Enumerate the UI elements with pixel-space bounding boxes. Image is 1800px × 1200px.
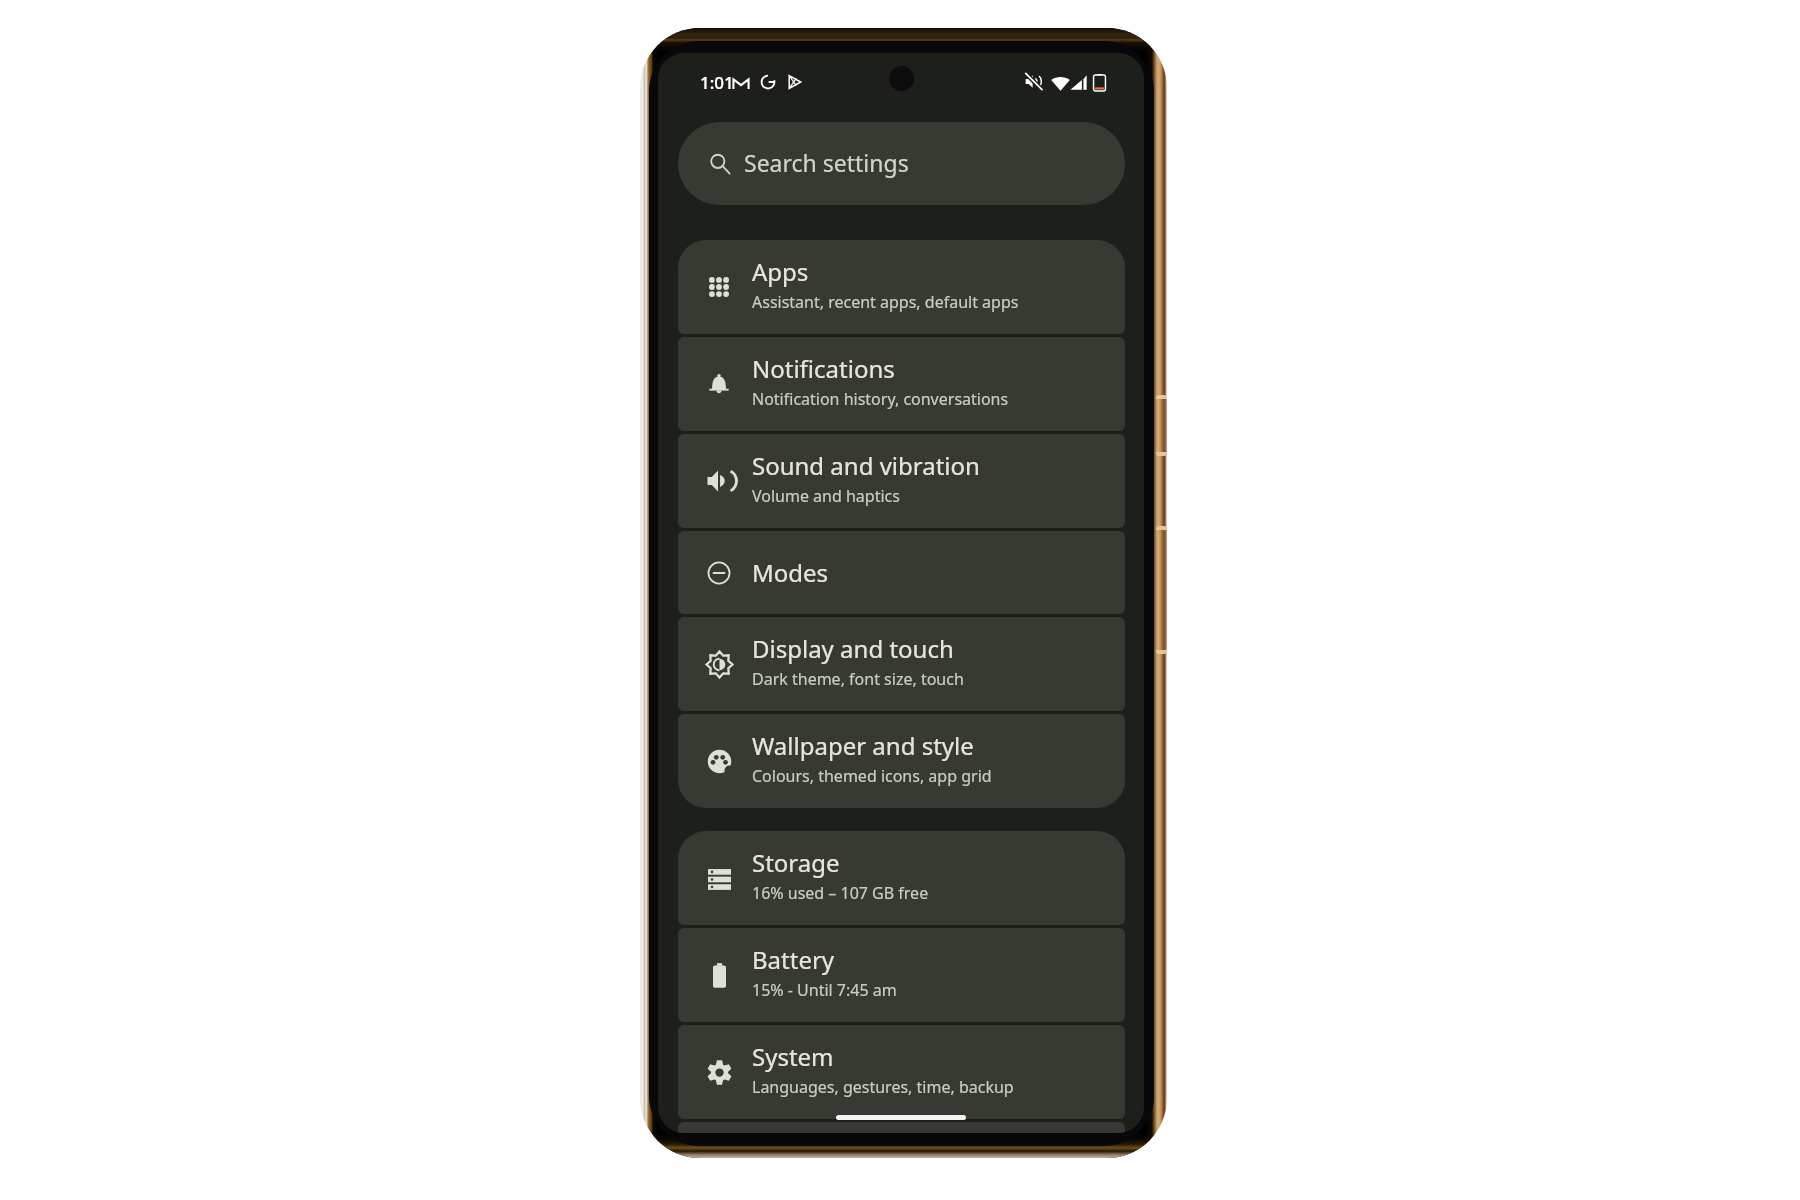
staticText: Dark theme, font size, touch [752,668,964,690]
staticText: Colours, themed icons, app grid [752,765,992,787]
staticText: Search settings [744,147,909,178]
staticText: Apps [752,255,809,288]
button[interactable]: Search settings [678,122,1125,205]
staticText: 15% - Until 7:45 am [752,979,897,1001]
button[interactable]: Display and touch [678,617,1125,711]
staticText: 16% used – 107 GB free [752,882,929,904]
staticText: Battery [752,943,835,976]
other: Power [1156,526,1167,654]
staticText: Languages, gestures, time, backup [752,1076,1014,1098]
staticText: Sound and vibration [752,449,980,482]
staticText: 1:01 [700,71,734,94]
button[interactable]: Apps [678,240,1125,334]
button[interactable]: Battery [678,928,1125,1022]
button[interactable]: Notifications [678,337,1125,431]
staticText: Notification history, conversations [752,388,1009,410]
button[interactable]: System [678,1025,1125,1119]
staticText: Assistant, recent apps, default apps [752,291,1019,313]
button[interactable]: Sound and vibration [678,434,1125,528]
staticText: Modes [752,556,829,589]
staticText: System [752,1040,834,1073]
button[interactable]: Wallpaper and style [678,714,1125,808]
button[interactable]: Modes [678,531,1125,614]
other: Volume [1156,395,1167,456]
button[interactable]: Storage [678,831,1125,925]
staticText: Wallpaper and style [752,729,974,762]
staticText: Display and touch [752,632,954,665]
staticText: Storage [752,846,840,879]
staticText: Notifications [752,352,895,385]
staticText: Volume and haptics [752,485,900,507]
